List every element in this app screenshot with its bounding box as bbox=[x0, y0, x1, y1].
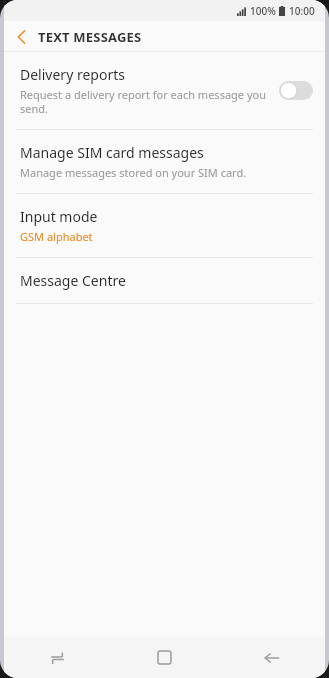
staticText: Input mode bbox=[20, 207, 98, 226]
staticText: 100% bbox=[250, 4, 276, 18]
staticText: Message Centre bbox=[20, 271, 126, 290]
staticText: Manage SIM card messages bbox=[20, 143, 204, 162]
button[interactable]: Input mode bbox=[4, 194, 325, 257]
staticText: 10:00 bbox=[289, 4, 315, 18]
button[interactable]: Message Centre bbox=[4, 258, 325, 303]
button[interactable]: Recents bbox=[4, 637, 111, 678]
button[interactable]: Delivery reports toggle bbox=[279, 81, 313, 100]
staticText: Delivery reports bbox=[20, 65, 125, 84]
button[interactable]: Home bbox=[111, 637, 218, 678]
button[interactable]: Back bbox=[218, 637, 325, 678]
staticText: Manage messages stored on your SIM card. bbox=[20, 165, 247, 180]
staticText: GSM alphabet bbox=[20, 229, 93, 244]
button[interactable]: Manage SIM card messages bbox=[4, 130, 325, 193]
staticText: Request a delivery report for each messa… bbox=[20, 87, 271, 116]
button[interactable]: Back bbox=[4, 21, 38, 52]
staticText: TEXT MESSAGES bbox=[38, 28, 142, 46]
button[interactable]: Delivery reports bbox=[4, 52, 325, 129]
